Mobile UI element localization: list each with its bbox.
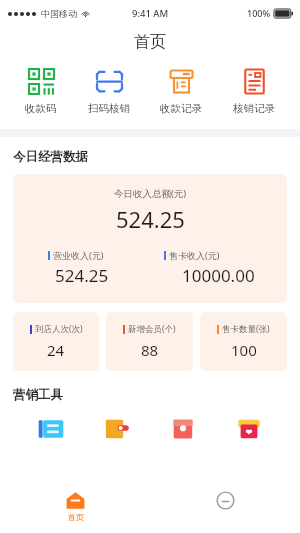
staticText: 9:41 AM [132,7,169,20]
button[interactable]: 储值卡 [94,412,140,446]
button[interactable]: 售卡数量(张) [200,312,287,371]
staticText: 今日经营数据 [13,149,88,165]
staticText: 新增会员(个) [128,323,176,335]
staticText: 88 [141,340,159,360]
button[interactable]: 首页 [52,487,99,526]
staticText: 10000.00 [182,264,255,287]
button[interactable]: 我的 [202,487,249,514]
button[interactable]: 收款记录 [154,66,208,117]
button[interactable]: 礼品 [226,412,272,446]
staticText: 收款记录 [160,102,202,115]
staticText: 售卡收入(元) [169,249,220,261]
staticText: 营业收入(元) [53,249,104,261]
staticText: 首页 [68,512,84,522]
staticText: 营销工具 [13,387,63,403]
staticText: 到店人次(次) [35,323,83,335]
button[interactable]: 优惠券 [28,412,74,446]
staticText: 售卡数量(张) [222,323,270,335]
staticText: 中国移动 [41,8,77,19]
staticText: 100% [247,7,271,19]
staticText: 24 [47,340,65,360]
button[interactable]: 扫码核销 [82,66,136,117]
button[interactable]: 核销记录 [227,66,281,117]
staticText: 收款码 [25,102,57,115]
button[interactable]: 新增会员(个) [106,312,193,371]
button[interactable]: 到店人次(次) [13,312,99,371]
staticText: 100 [231,340,257,360]
button[interactable]: 收款码 [19,66,63,117]
button[interactable]: 红包 [160,412,206,446]
staticText: 524.25 [116,204,185,234]
staticText: 首页 [134,32,166,52]
staticText: 扫码核销 [88,102,130,115]
staticText: 今日收入总额(元) [114,187,187,200]
staticText: 核销记录 [233,102,275,115]
button[interactable]: 今日收入总额(元) [13,174,287,303]
staticText: 524.25 [55,264,109,287]
